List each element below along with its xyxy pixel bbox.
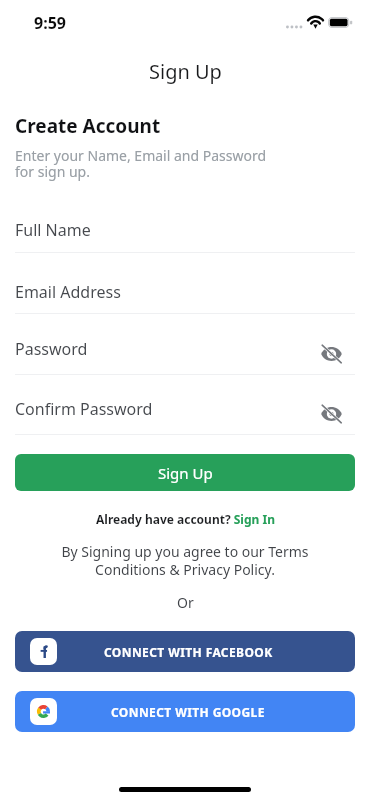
staticText: By Signing up you agree to our Terms Con…: [61, 542, 309, 579]
button[interactable]: Email Address: [0, 271, 370, 313]
button[interactable]: Full Name: [0, 209, 370, 251]
staticText: Create Account: [15, 113, 161, 139]
staticText: Full Name: [15, 219, 91, 241]
button[interactable]: Sign Up: [15, 454, 355, 491]
staticText: Sign Up: [158, 463, 213, 483]
staticText: Enter your Name, Email and Password for …: [15, 146, 267, 181]
other: Show password: [321, 407, 342, 421]
staticText: CONNECT WITH FACEBOOK: [104, 644, 273, 660]
button[interactable]: CONNECT WITH FACEBOOK: [15, 631, 355, 672]
button[interactable]: Confirm Password: [0, 388, 370, 430]
staticText: Confirm Password: [15, 398, 153, 420]
staticText: Password: [15, 338, 88, 360]
button[interactable]: CONNECT WITH GOOGLE: [15, 691, 355, 732]
staticText: Sign Up: [149, 58, 222, 84]
staticText: Email Address: [15, 281, 121, 303]
staticText: 9:59: [34, 12, 66, 34]
staticText: Already have account? Sign In: [96, 511, 275, 527]
staticText: CONNECT WITH GOOGLE: [111, 704, 265, 720]
other: Show password: [321, 347, 342, 361]
button[interactable]: Already have account? Sign In: [96, 511, 275, 527]
button[interactable]: Password: [0, 328, 370, 370]
staticText: Or: [177, 593, 194, 612]
